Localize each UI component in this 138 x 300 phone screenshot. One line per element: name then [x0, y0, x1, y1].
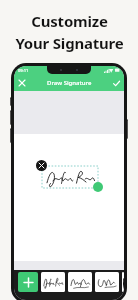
button[interactable]: Delete signature [36, 160, 47, 171]
staticText: Customize [31, 11, 108, 31]
button[interactable]: Signature 2 [68, 272, 92, 292]
staticText: 09:11 [18, 68, 29, 73]
staticText: Draw Signature [47, 79, 92, 87]
button[interactable]: Add signature [18, 272, 38, 292]
button[interactable]: Save signature [108, 75, 124, 91]
button[interactable]: Signature 3 [95, 272, 119, 292]
button[interactable]: Signature 1 [41, 272, 65, 292]
button[interactable]: Resize signature [93, 182, 103, 192]
button[interactable]: Close [14, 75, 30, 91]
button[interactable]: Signature 4 [122, 272, 124, 292]
staticText: Your Signature [15, 33, 124, 53]
